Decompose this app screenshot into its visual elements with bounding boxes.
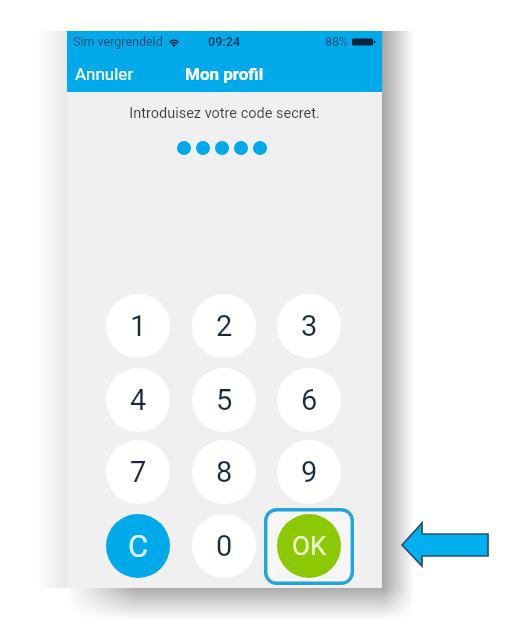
staticText: 09:24: [208, 34, 241, 49]
staticText: 2: [216, 309, 233, 343]
staticText: 6: [301, 383, 318, 417]
staticText: Mon profil: [185, 64, 264, 84]
staticText: 0: [216, 529, 233, 563]
button[interactable]: 7: [106, 440, 170, 504]
staticText: 5: [216, 383, 233, 417]
button[interactable]: 1: [106, 294, 170, 358]
button[interactable]: C: [106, 514, 170, 578]
button[interactable]: 8: [192, 440, 256, 504]
staticText: Sim vergrendeld: [73, 34, 163, 49]
staticText: 1: [130, 309, 147, 343]
button[interactable]: Annuler: [69, 56, 140, 92]
staticText: Introduisez votre code secret.: [67, 105, 382, 122]
button[interactable]: 6: [277, 368, 341, 432]
staticText: Annuler: [75, 64, 134, 84]
button[interactable]: 0: [192, 514, 256, 578]
button[interactable]: 2: [192, 294, 256, 358]
button[interactable]: 9: [277, 440, 341, 504]
button[interactable]: OK: [277, 514, 341, 578]
staticText: 7: [130, 455, 147, 489]
staticText: 4: [130, 383, 147, 417]
button[interactable]: 4: [106, 368, 170, 432]
staticText: 8: [216, 455, 233, 489]
button[interactable]: 5: [192, 368, 256, 432]
staticText: 3: [301, 309, 318, 343]
staticText: OK: [292, 531, 327, 561]
staticText: C: [128, 528, 149, 564]
button[interactable]: 3: [277, 294, 341, 358]
staticText: 9: [301, 455, 318, 489]
staticText: 88%: [325, 34, 349, 49]
